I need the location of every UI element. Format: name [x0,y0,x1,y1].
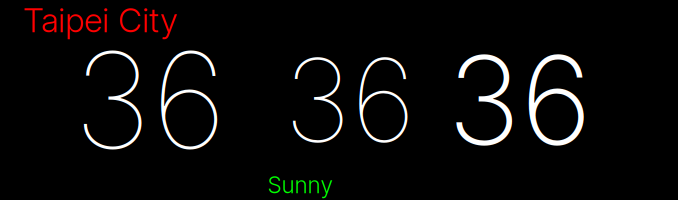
staticText: 36 [284,31,416,169]
staticText: 36 [73,19,226,181]
staticText: 36 [447,26,592,174]
staticText: Taipei City [23,0,177,40]
staticText: Sunny [267,171,332,199]
